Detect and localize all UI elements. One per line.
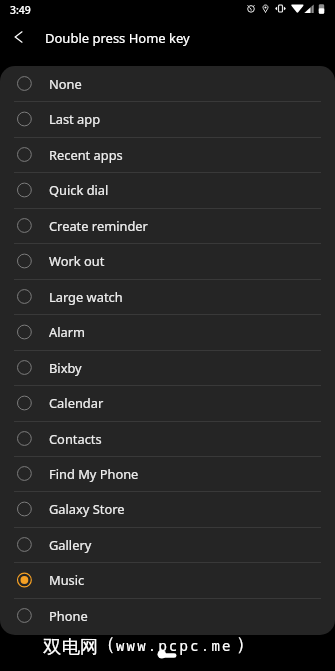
button[interactable]: Phone (0, 598, 335, 633)
button[interactable]: Create reminder (0, 208, 335, 243)
button[interactable]: Quick dial (0, 172, 335, 208)
button[interactable]: Calendar (0, 385, 335, 421)
staticText: Create reminder (49, 217, 148, 235)
staticText: Work out (49, 252, 105, 270)
button[interactable]: Large watch (0, 279, 335, 314)
button[interactable]: Bixby (0, 350, 335, 385)
staticText: Find My Phone (49, 465, 139, 483)
button[interactable]: Gallery (0, 527, 335, 562)
button[interactable]: Navigate up (3, 24, 33, 54)
staticText: 3:49 (10, 3, 31, 17)
button[interactable]: None (0, 66, 335, 101)
staticText: None (49, 75, 82, 93)
staticText: Large watch (49, 288, 123, 306)
staticText: Bixby (49, 359, 82, 377)
button[interactable]: Contacts (0, 421, 335, 456)
staticText: Music (49, 571, 85, 589)
staticText: （ (97, 632, 116, 655)
staticText: 双电网 (43, 635, 99, 658)
button[interactable]: Last app (0, 101, 335, 137)
button[interactable]: Recent apps (0, 137, 335, 172)
button[interactable]: Work out (0, 243, 335, 279)
staticText: Recent apps (49, 146, 123, 164)
button[interactable]: Music (0, 562, 335, 598)
staticText: Double press Home key (45, 29, 190, 47)
button[interactable]: Find My Phone (0, 456, 335, 491)
staticText: ） (236, 632, 255, 655)
staticText: Quick dial (49, 181, 109, 199)
staticText: Contacts (49, 430, 102, 448)
button[interactable]: Alarm (0, 314, 335, 350)
staticText: www.pcpc.me (116, 636, 233, 655)
staticText: Calendar (49, 394, 104, 412)
staticText: Galaxy Store (49, 500, 125, 518)
staticText: Phone (49, 607, 88, 625)
staticText: Gallery (49, 536, 92, 554)
staticText: Alarm (49, 323, 86, 341)
button[interactable]: Galaxy Store (0, 491, 335, 527)
staticText: Last app (49, 110, 101, 128)
